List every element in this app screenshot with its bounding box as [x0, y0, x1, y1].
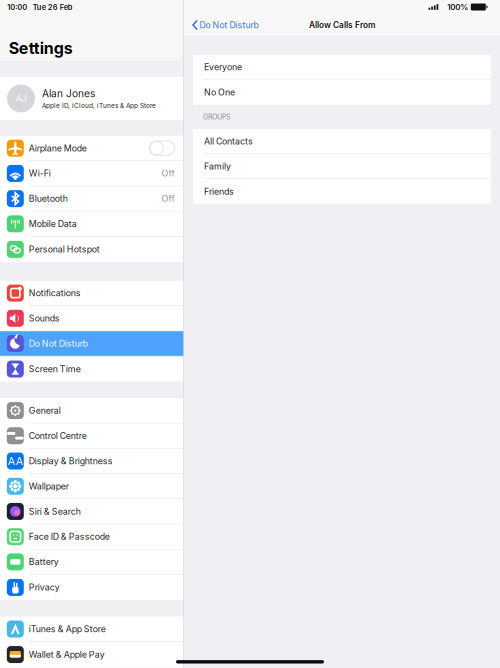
staticText: Off — [161, 193, 174, 204]
staticText: No One — [204, 87, 235, 98]
staticText: Wallpaper — [29, 481, 69, 491]
staticText: Wi-Fi — [29, 168, 51, 179]
staticText: Siri & Search — [29, 506, 81, 517]
button[interactable]: Family — [193, 154, 491, 179]
staticText: Mobile Data — [29, 218, 77, 229]
staticText: 100% — [447, 2, 468, 12]
staticText: Face ID & Passcode — [29, 531, 110, 542]
staticText: Do Not Disturb — [199, 20, 258, 30]
button[interactable]: Airplane Mode — [0, 136, 183, 161]
button[interactable]: All Contacts — [193, 129, 491, 154]
button[interactable]: Wallet & Apple Pay — [0, 642, 183, 667]
button[interactable]: Bluetooth — [0, 186, 183, 211]
staticText: 10:00 — [7, 3, 27, 12]
staticText: Battery — [29, 557, 59, 567]
button[interactable]: AA — [0, 449, 183, 474]
staticText: Screen Time — [29, 364, 81, 374]
staticText: Display & Brightness — [29, 456, 113, 466]
staticText: Settings — [9, 38, 73, 58]
staticText: iTunes & App Store — [29, 624, 106, 634]
button[interactable]: Wallpaper — [0, 474, 183, 499]
staticText: Tue 26 Feb — [33, 3, 73, 12]
staticText: Wallet & Apple Pay — [29, 649, 105, 660]
button[interactable]: General — [0, 398, 183, 423]
button[interactable]: iTunes & App Store — [0, 617, 183, 642]
staticText: Apple ID, iCloud, iTunes & App Store — [42, 102, 156, 109]
staticText: Friends — [204, 186, 234, 197]
staticText: Notifications — [29, 288, 81, 298]
button[interactable]: Privacy — [0, 575, 183, 600]
staticText: Privacy — [29, 582, 60, 593]
button[interactable]: Mobile Data — [0, 211, 183, 237]
staticText: Everyone — [204, 62, 242, 72]
staticText: Bluetooth — [29, 193, 68, 204]
staticText: Personal Hotspot — [29, 244, 100, 255]
button[interactable]: Everyone — [193, 55, 491, 80]
button[interactable]: Personal Hotspot — [0, 237, 183, 262]
staticText: Airplane Mode — [29, 143, 87, 153]
button[interactable]: Do Not Disturb — [184, 16, 258, 34]
button[interactable]: Control Centre — [0, 423, 183, 449]
staticText: Family — [204, 161, 231, 171]
staticText: Sounds — [29, 313, 60, 324]
button[interactable]: Do Not Disturb — [0, 331, 183, 356]
button[interactable]: AJ — [0, 77, 183, 120]
button[interactable]: Friends — [193, 179, 491, 204]
staticText: AA — [8, 455, 23, 467]
staticText: AJ — [15, 93, 26, 104]
button[interactable]: Siri & Search — [0, 499, 183, 524]
staticText: Control Centre — [29, 430, 87, 441]
button[interactable]: No One — [193, 80, 491, 105]
staticText: Alan Jones — [42, 87, 95, 100]
button[interactable]: Battery — [0, 550, 183, 575]
button[interactable]: Screen Time — [0, 356, 183, 382]
staticText: Do Not Disturb — [29, 338, 88, 349]
staticText: GROUPS — [203, 113, 230, 121]
button[interactable]: Wi-Fi — [0, 161, 183, 186]
button[interactable]: Notifications — [0, 281, 183, 306]
button[interactable]: Face ID & Passcode — [0, 524, 183, 550]
staticText: Off — [161, 168, 174, 179]
staticText: General — [29, 405, 61, 416]
button[interactable]: Sounds — [0, 306, 183, 331]
staticText: All Contacts — [204, 136, 253, 147]
staticText: Allow Calls From — [309, 20, 375, 30]
